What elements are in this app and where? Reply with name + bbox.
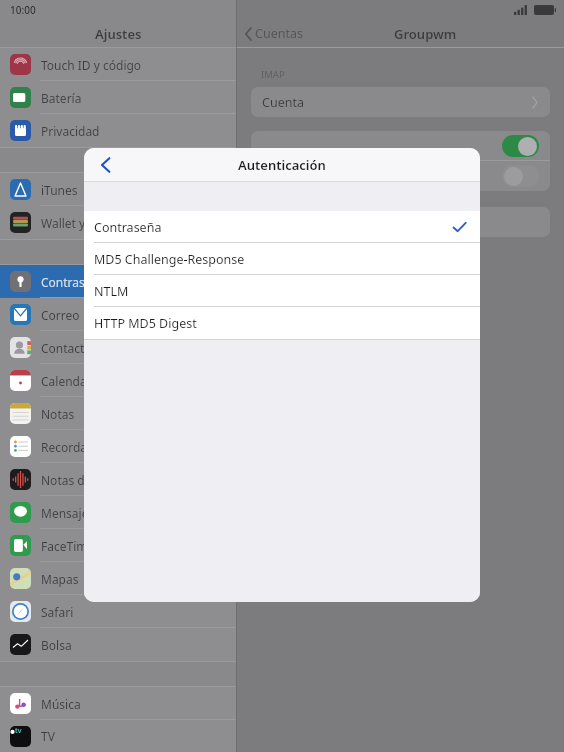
staticText: Notas xyxy=(41,406,75,422)
button[interactable]: Contraseñas xyxy=(0,265,236,298)
button[interactable]: Recordatorios xyxy=(0,430,236,463)
staticText: Contactos xyxy=(41,340,98,356)
button[interactable]: Desactivado xyxy=(251,161,550,190)
staticText: FaceTime xyxy=(41,538,95,554)
button[interactable]: Contraseña xyxy=(84,211,480,243)
staticText: HTTP MD5 Digest xyxy=(94,315,197,332)
staticText: NTLM xyxy=(94,283,129,300)
staticText: MD5 Challenge-Response xyxy=(94,251,245,268)
button[interactable]: Safari xyxy=(0,595,236,628)
staticText: 10:00 xyxy=(10,3,36,17)
button[interactable]: NTLM xyxy=(84,275,480,307)
staticText: Privacidad xyxy=(41,123,100,139)
staticText: Bolsa xyxy=(41,637,72,653)
staticText: Calendario xyxy=(41,373,103,389)
staticText: IMAP xyxy=(261,68,285,81)
button[interactable]: iTunes xyxy=(0,173,236,206)
button[interactable]: MD5 Challenge-Response xyxy=(84,243,480,275)
button[interactable]: Privacidad xyxy=(0,114,236,147)
staticText: Groupwm xyxy=(394,25,457,43)
button[interactable]: Cuenta xyxy=(251,87,550,117)
button[interactable]: Bolsa xyxy=(0,628,236,661)
button[interactable]: Notas de voz xyxy=(0,463,236,496)
staticText: Batería xyxy=(41,90,82,106)
button[interactable]: Calendario xyxy=(0,364,236,397)
staticText: Touch ID y código xyxy=(41,57,142,73)
staticText: Música xyxy=(41,696,81,712)
staticText: Correo xyxy=(41,307,80,323)
staticText: tv xyxy=(15,726,22,736)
staticText: Cuenta xyxy=(262,94,304,111)
button[interactable]: Wallet y xyxy=(0,206,236,239)
button[interactable]: Back xyxy=(88,148,122,181)
staticText: Safari xyxy=(41,604,74,620)
other: Activado xyxy=(502,135,539,157)
button[interactable]: tv xyxy=(0,720,236,752)
button[interactable]: Correo xyxy=(0,298,236,331)
button[interactable]: Contactos xyxy=(0,331,236,364)
button[interactable]: Activado xyxy=(251,131,550,160)
staticText: Autenticación xyxy=(238,156,326,174)
button[interactable]: FaceTime xyxy=(0,529,236,562)
staticText: iTunes xyxy=(41,182,78,198)
staticText: Mapas xyxy=(41,571,79,587)
button[interactable]: Mapas xyxy=(0,562,236,595)
button[interactable]: Mensajes xyxy=(0,496,236,529)
button[interactable]: Música xyxy=(0,687,236,720)
button[interactable]: Cuentas xyxy=(245,25,303,42)
button[interactable]: HTTP MD5 Digest xyxy=(84,307,480,339)
staticText: Recordatorios xyxy=(41,439,120,455)
other: Desactivado xyxy=(502,165,539,187)
button[interactable]: Touch ID y código xyxy=(0,48,236,81)
staticText: Wallet y xyxy=(41,215,86,231)
staticText: TV xyxy=(41,728,55,744)
staticText: Notas de voz xyxy=(41,472,114,488)
staticText: Mensajes xyxy=(41,505,95,521)
button[interactable]: Notas xyxy=(0,397,236,430)
button[interactable]: Batería xyxy=(0,81,236,114)
staticText: Ajustes xyxy=(95,25,142,43)
staticText: Contraseña xyxy=(94,219,162,236)
staticText: Contraseñas xyxy=(41,274,112,290)
staticText: Cuentas xyxy=(255,25,303,42)
